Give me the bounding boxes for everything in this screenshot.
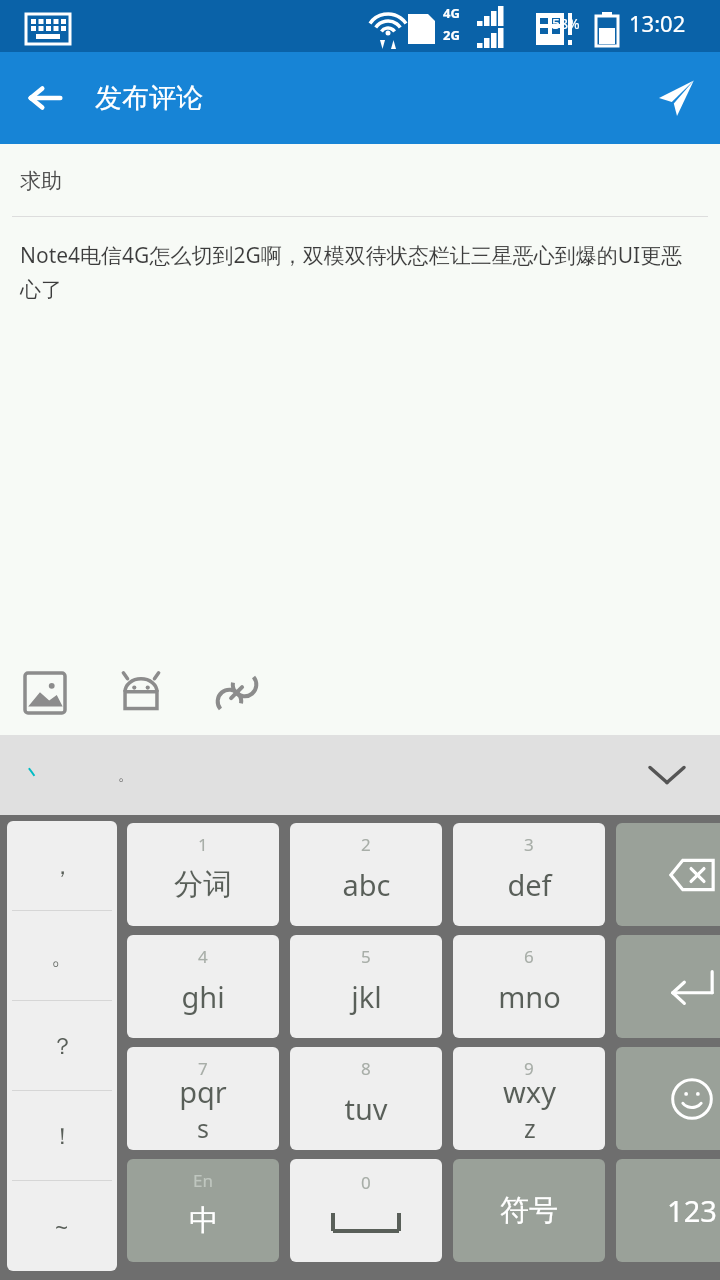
button[interactable]: 2 [290, 823, 442, 926]
button[interactable]: ！ [7, 1091, 117, 1181]
staticText: 4 [198, 945, 208, 968]
button[interactable]: 5 [290, 935, 442, 1038]
staticText: s [197, 1111, 209, 1145]
button[interactable]: 9 [453, 1047, 605, 1150]
button[interactable]: ， [7, 821, 117, 911]
staticText: z [524, 1111, 536, 1145]
staticText: 。 [118, 766, 133, 785]
staticText: ghi [181, 977, 225, 1016]
button[interactable]: 6 [453, 935, 605, 1038]
button[interactable]: ~ [7, 1181, 117, 1271]
button[interactable]: ？ [7, 1001, 117, 1091]
button[interactable]: 123 [616, 1159, 720, 1262]
staticText: def [507, 865, 552, 904]
button[interactable]: 3 [453, 823, 605, 926]
staticText: 4G [443, 4, 460, 22]
staticText: ！ [51, 1122, 74, 1151]
button[interactable]: Emoji [110, 662, 172, 724]
button[interactable]: Send [644, 67, 706, 129]
button[interactable]: 。 [7, 911, 117, 1001]
button[interactable]: Add link [206, 662, 268, 724]
staticText: 。 [51, 942, 74, 971]
staticText: ， [51, 852, 74, 881]
staticText: abc [342, 865, 391, 904]
staticText: 1 [198, 833, 208, 856]
button[interactable]: Back [14, 67, 76, 129]
button[interactable]: Backspace [616, 823, 720, 926]
button[interactable]: 7 [127, 1047, 279, 1150]
staticText: 求助 [20, 168, 62, 194]
staticText: ~ [55, 1211, 69, 1242]
staticText: 5 [361, 945, 371, 968]
staticText: pqr [179, 1072, 227, 1111]
staticText: 6 [524, 945, 534, 968]
staticText: 2G [443, 26, 460, 44]
staticText: 123 [667, 1191, 717, 1230]
button[interactable]: 4 [127, 935, 279, 1038]
staticText: 3 [524, 833, 534, 856]
staticText: Note4电信4G怎么切到2G啊，双模双待状态栏让三星恶心到爆的UI更恶心了 [20, 241, 700, 303]
staticText: jkl [351, 977, 382, 1016]
staticText: 8 [361, 1057, 371, 1080]
staticText: ？ [51, 1032, 74, 1061]
button[interactable]: 符号 [453, 1159, 605, 1262]
button[interactable]: 8 [290, 1047, 442, 1150]
staticText: 9 [524, 1057, 534, 1080]
button[interactable]: En [127, 1159, 279, 1262]
staticText: tuv [344, 1089, 388, 1128]
button[interactable]: Hide keyboard [640, 748, 694, 802]
staticText: En [193, 1169, 213, 1192]
button[interactable]: Emoji [616, 1047, 720, 1150]
staticText: 2 [361, 833, 371, 856]
staticText: mno [498, 977, 561, 1016]
button[interactable]: Enter [616, 935, 720, 1038]
staticText: 中 [189, 1202, 218, 1239]
button[interactable]: 1 [127, 823, 279, 926]
staticText: 7 [198, 1057, 208, 1080]
staticText: 符号 [500, 1192, 558, 1229]
staticText: 13:02 [629, 8, 686, 38]
button[interactable]: Add image [14, 662, 76, 724]
staticText: wxy [503, 1072, 556, 1111]
staticText: 分词 [174, 866, 232, 903]
staticText: 发布评论 [95, 81, 203, 115]
staticText: 丶 [22, 761, 44, 789]
staticText: 0 [361, 1171, 371, 1194]
button[interactable]: Space [290, 1159, 442, 1262]
staticText: 58% [552, 14, 580, 33]
